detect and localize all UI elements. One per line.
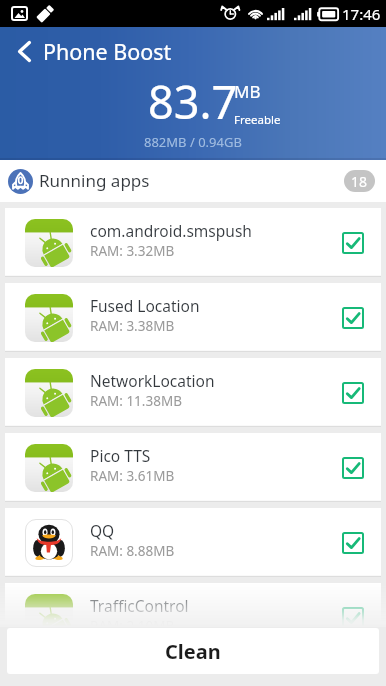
button[interactable]: Select com.android.smspush <box>342 232 364 254</box>
staticText: RAM: 3.38MB <box>90 317 175 335</box>
staticText: RAM: 11.38MB <box>90 392 182 410</box>
staticText: 18 <box>351 172 368 191</box>
staticText: 17:46 <box>342 4 381 24</box>
button[interactable]: Select TrafficControl <box>342 607 364 629</box>
staticText: Freeable <box>234 112 281 128</box>
button[interactable]: Select NetworkLocation <box>342 382 364 404</box>
staticText: QQ <box>90 520 115 541</box>
button[interactable]: Back <box>0 27 184 75</box>
other: Back <box>18 41 31 62</box>
staticText: Running apps <box>39 169 150 192</box>
staticText: RAM: 3.32MB <box>90 242 175 260</box>
staticText: Phone Boost <box>43 37 172 66</box>
staticText: Clean <box>165 638 221 665</box>
button[interactable]: Select Fused Location <box>342 307 364 329</box>
staticText: 83.7 <box>148 71 238 132</box>
button[interactable]: Select Pico TTS <box>342 457 364 479</box>
button[interactable]: TrafficControl <box>5 583 381 652</box>
staticText: Fused Location <box>90 295 200 316</box>
staticText: 882MB / 0.94GB <box>144 133 242 151</box>
staticText: RAM: 8.88MB <box>90 542 175 560</box>
button[interactable]: Select QQ <box>342 532 364 554</box>
button[interactable]: Fused Location <box>5 283 381 352</box>
staticText: RAM: 2.10MB <box>90 617 175 635</box>
staticText: TrafficControl <box>90 595 189 616</box>
button[interactable]: NetworkLocation <box>5 358 381 427</box>
button[interactable]: com.android.smspush <box>5 208 381 277</box>
staticText: Pico TTS <box>90 445 151 466</box>
staticText: NetworkLocation <box>90 370 215 391</box>
staticText: RAM: 3.61MB <box>90 467 175 485</box>
staticText: MB <box>234 80 261 103</box>
button[interactable]: Pico TTS <box>5 433 381 502</box>
button[interactable]: Clean <box>7 628 379 674</box>
button[interactable]: QQ <box>5 508 381 577</box>
button[interactable]: Running apps <box>0 160 386 202</box>
staticText: com.android.smspush <box>90 220 252 241</box>
